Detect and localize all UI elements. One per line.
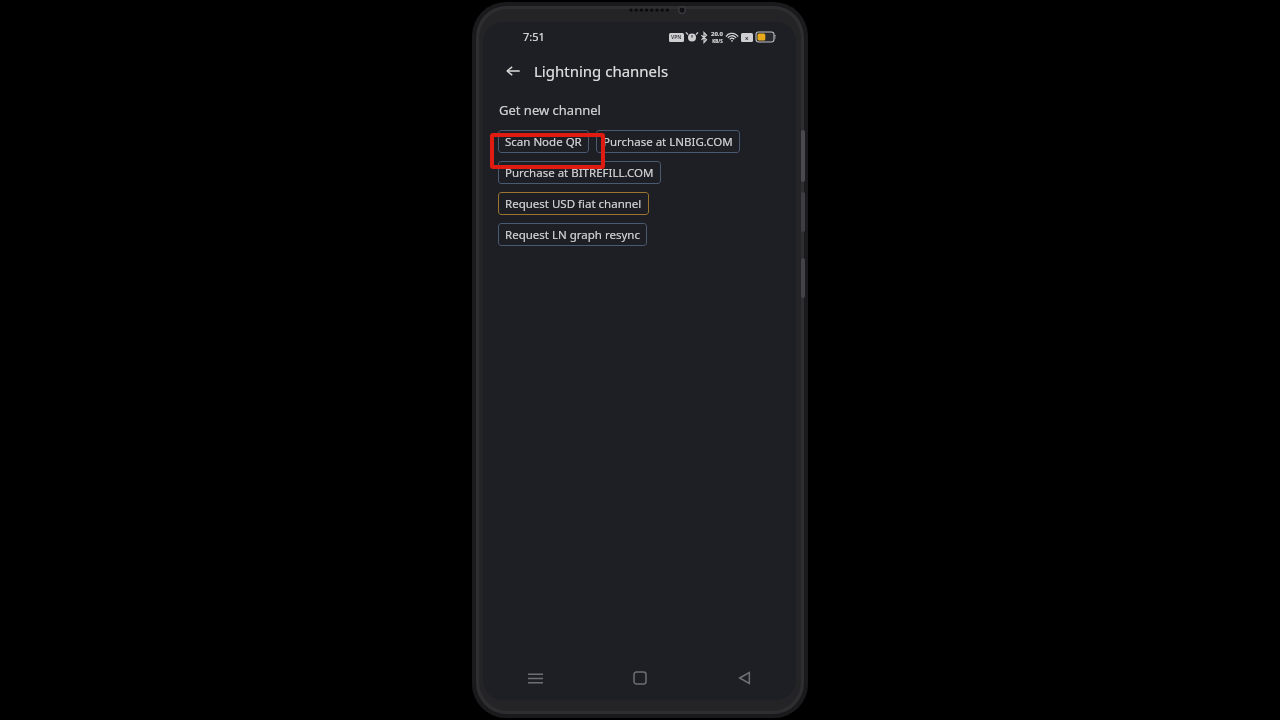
button[interactable]: Purchase at LNBIG.COM: [596, 130, 740, 153]
staticText: x: [745, 34, 749, 42]
button[interactable]: Request LN graph resync: [498, 223, 647, 246]
staticText: VPN: [671, 34, 682, 41]
button[interactable]: Home: [588, 656, 692, 700]
staticText: 7:51: [523, 29, 545, 44]
staticText: Get new channel: [499, 101, 601, 119]
staticText: Request USD fiat channel: [505, 196, 642, 212]
button[interactable]: Recent apps: [483, 656, 588, 700]
staticText: 20.0: [711, 30, 723, 38]
staticText: Purchase at LNBIG.COM: [603, 134, 733, 150]
staticText: Purchase at BITREFILL.COM: [505, 165, 654, 181]
staticText: Request LN graph resync: [505, 227, 640, 243]
staticText: Scan Node QR: [505, 134, 582, 150]
staticText: KB/S: [712, 38, 723, 44]
staticText: Lightning channels: [534, 61, 669, 81]
button[interactable]: Back: [499, 57, 527, 85]
button[interactable]: Scan Node QR: [498, 130, 589, 153]
button[interactable]: Purchase at BITREFILL.COM: [498, 161, 661, 184]
button[interactable]: Back: [692, 656, 796, 700]
button[interactable]: Request USD fiat channel: [498, 192, 649, 215]
